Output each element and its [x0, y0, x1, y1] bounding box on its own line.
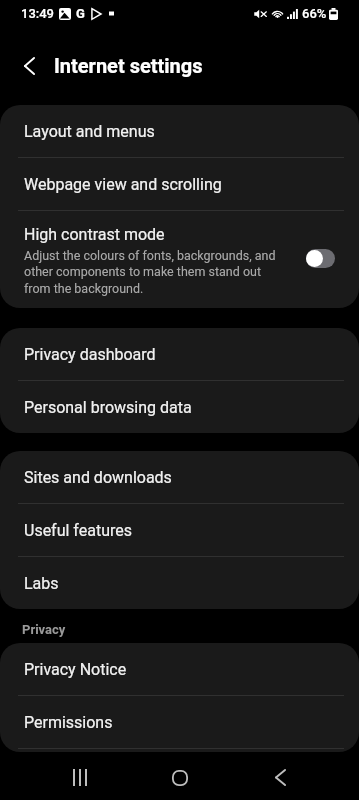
button[interactable]: Personal browsing data — [0, 381, 359, 433]
staticText: High contrast mode — [24, 225, 165, 244]
button[interactable]: Webpage view and scrolling — [0, 158, 359, 210]
button[interactable]: Useful features — [0, 504, 359, 556]
staticText: G — [76, 6, 85, 21]
staticText: Internet settings — [54, 54, 203, 77]
button[interactable]: High contrast mode — [0, 211, 359, 308]
staticText: 13:49 — [21, 6, 55, 21]
button[interactable]: Layout and menus — [0, 105, 359, 157]
button[interactable]: Sites and downloads — [0, 451, 359, 503]
button[interactable]: High contrast mode toggle — [306, 244, 335, 272]
staticText: Useful features — [24, 521, 132, 540]
staticText: Permissions — [24, 713, 113, 732]
button[interactable]: Privacy dashboard — [0, 328, 359, 380]
staticText: 66% — [302, 6, 327, 21]
staticText: Privacy dashboard — [24, 345, 156, 364]
button[interactable]: Permissions — [0, 696, 359, 748]
staticText: Privacy — [22, 622, 66, 637]
button[interactable]: Back — [256, 755, 304, 800]
button[interactable]: Navigate up — [5, 44, 53, 88]
staticText: Adjust the colours of fonts, backgrounds… — [24, 248, 280, 297]
staticText: Personal browsing data — [24, 398, 192, 417]
staticText: Privacy Notice — [24, 660, 127, 679]
button[interactable]: Recent apps — [56, 755, 104, 800]
staticText: Sites and downloads — [24, 468, 172, 487]
button[interactable]: Labs — [0, 557, 359, 609]
staticText: Layout and menus — [24, 122, 155, 141]
staticText: Webpage view and scrolling — [24, 175, 222, 194]
staticText: Labs — [24, 574, 59, 593]
button[interactable]: Home — [156, 755, 204, 800]
button[interactable]: Privacy Notice — [0, 643, 359, 695]
